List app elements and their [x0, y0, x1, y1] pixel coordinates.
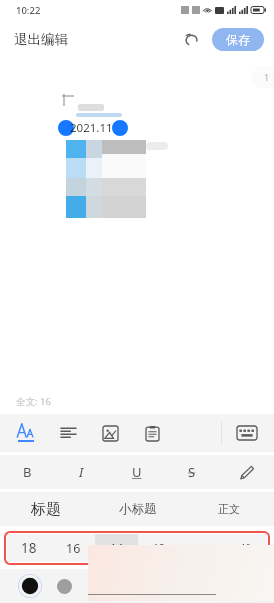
staticText: 12 — [153, 541, 166, 555]
staticText: 16 — [66, 540, 81, 557]
staticText: B — [23, 463, 32, 481]
button[interactable]: 16 — [51, 534, 95, 562]
button[interactable]: 保存 — [212, 28, 264, 51]
staticText: 小标题 — [119, 501, 157, 517]
staticText: U — [132, 463, 142, 481]
button[interactable]: 10 — [224, 534, 267, 562]
staticText: 保存 — [226, 32, 250, 47]
button[interactable]: I — [54, 455, 109, 489]
staticText: 2021.11 — [70, 120, 113, 136]
button[interactable]: 正文 — [183, 492, 274, 526]
button[interactable]: 小标题 — [92, 492, 183, 526]
button[interactable]: B — [0, 455, 54, 489]
button[interactable]: S — [164, 455, 219, 489]
staticText: 10 — [241, 542, 251, 554]
staticText: 11 — [197, 542, 208, 555]
button[interactable]: Align — [52, 417, 84, 449]
button[interactable]: U — [109, 455, 164, 489]
button[interactable]: Grey colour — [52, 574, 76, 598]
button[interactable]: 14 — [95, 534, 138, 562]
button[interactable]: 标题 — [0, 492, 92, 526]
staticText: 标题 — [31, 500, 61, 519]
button[interactable]: Undo — [178, 26, 204, 52]
staticText: S — [188, 463, 196, 481]
button[interactable]: Insert image — [94, 417, 126, 449]
staticText: 1 — [264, 71, 270, 83]
button[interactable]: Clipboard — [136, 417, 168, 449]
button[interactable]: Hide keyboard — [232, 418, 262, 448]
button[interactable]: Highlighter — [219, 455, 274, 489]
button[interactable]: 11 — [181, 534, 224, 562]
staticText: 14 — [110, 540, 124, 556]
button[interactable]: 1 — [252, 66, 274, 88]
staticText: 10:22 — [16, 4, 41, 17]
button[interactable]: 18 — [7, 534, 51, 562]
staticText: 全文: 16 — [16, 395, 51, 408]
button[interactable]: 退出编辑 — [0, 27, 76, 52]
staticText: I — [79, 463, 84, 481]
staticText: 18 — [21, 539, 37, 557]
button[interactable]: Black colour — [18, 574, 42, 598]
button[interactable]: Text style — [8, 416, 42, 450]
button[interactable]: 12 — [138, 534, 181, 562]
staticText: 正文 — [218, 502, 240, 516]
